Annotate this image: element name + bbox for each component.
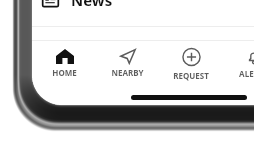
button[interactable]: News xyxy=(32,0,254,17)
button[interactable]: HOME xyxy=(33,45,96,79)
staticText: REQUEST xyxy=(173,70,209,81)
staticText: NEARBY xyxy=(111,67,144,78)
button[interactable]: NEARBY xyxy=(96,45,159,79)
staticText: ALERTS xyxy=(239,68,254,79)
button[interactable]: ALERTS xyxy=(222,45,254,79)
button[interactable]: REQUEST xyxy=(159,45,222,79)
staticText: News xyxy=(71,0,113,10)
staticText: HOME xyxy=(52,67,77,78)
